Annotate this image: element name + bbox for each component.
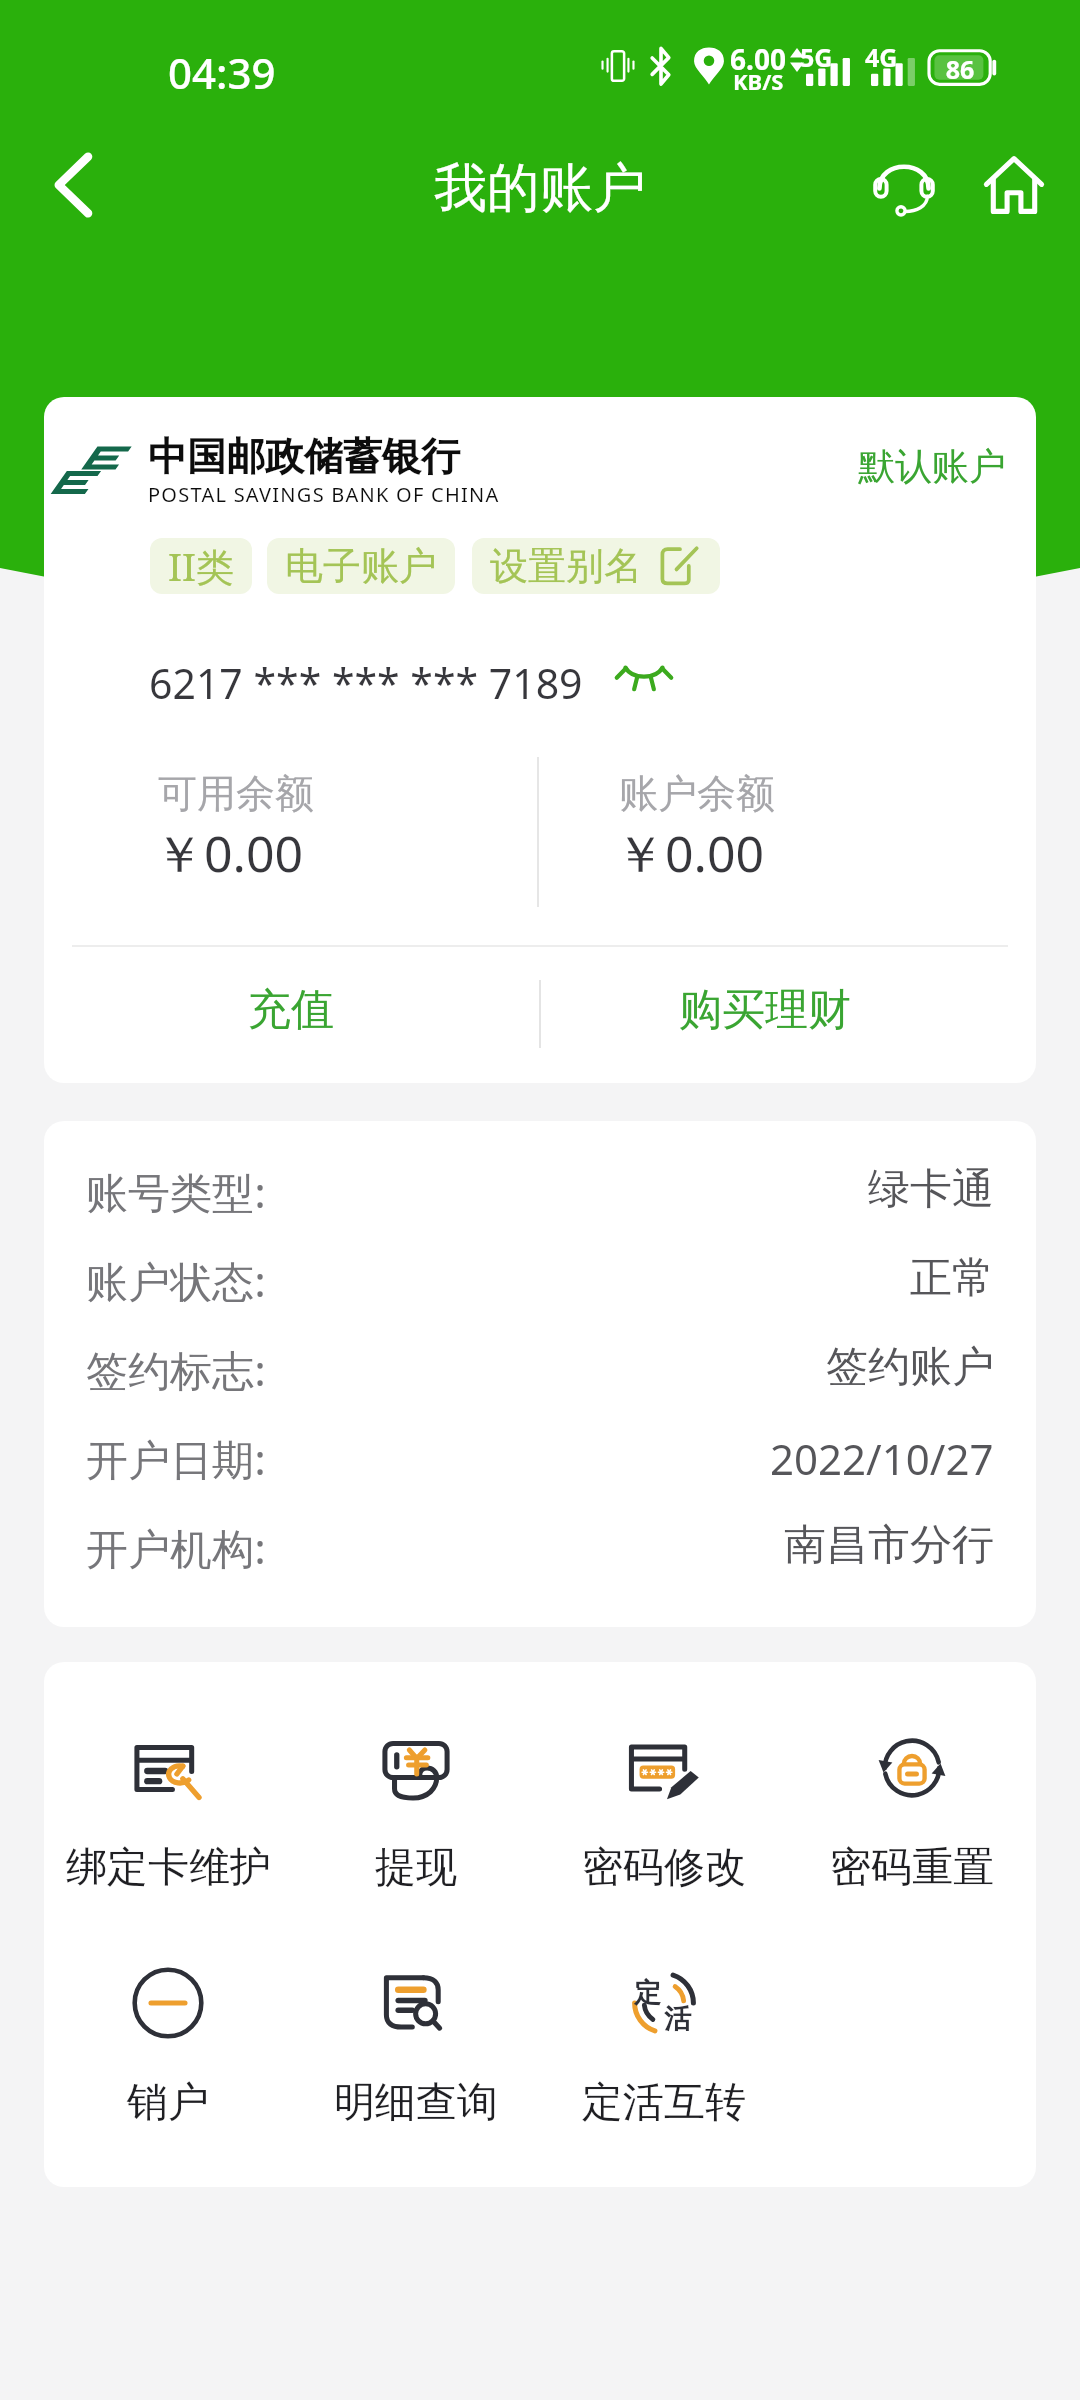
staticText: 可用余额 [158,769,314,818]
staticText: 绿卡通 [868,1163,994,1216]
staticText: 购买理财 [679,983,851,1037]
button[interactable]: 明细查询 [292,1973,540,2129]
button[interactable]: 充值 [44,947,540,1077]
button[interactable]: Home [968,130,1060,240]
staticText: 账号类型: [86,1163,267,1220]
staticText: 账户余额 [619,769,775,818]
staticText: II类 [168,540,234,592]
staticText: 中国邮政储蓄银行 [148,432,460,481]
button[interactable]: Back [18,130,128,240]
staticText: 6.00 [730,40,786,78]
staticText: 设置别名 [490,542,642,590]
staticText: 销户 [127,2077,209,2129]
staticText: 提现 [375,1842,457,1894]
staticText: 电子账户 [285,542,437,590]
button[interactable]: 定 [540,1973,788,2129]
staticText: 6217 *** *** *** 7189 [149,655,583,711]
button[interactable]: 设置别名 [472,538,720,594]
staticText: 开户机构: [86,1519,267,1576]
button[interactable]: Customer service [858,130,950,240]
staticText: 充值 [248,983,334,1037]
button[interactable]: 默认账户 [844,425,1020,507]
staticText: 账户状态: [86,1252,267,1309]
button[interactable]: 密码修改 [540,1738,788,1894]
staticText: 正常 [910,1252,994,1305]
button[interactable]: 密码重置 [788,1738,1036,1894]
staticText: 密码修改 [582,1842,746,1894]
staticText: 默认账户 [858,443,1006,490]
staticText: POSTAL SAVINGS BANK OF CHINA [148,481,500,508]
staticText: 活 [664,2002,691,2036]
staticText: 开户日期: [86,1430,267,1487]
staticText: ￥0.00 [154,819,304,887]
button[interactable]: Toggle card number visibility [604,640,684,712]
staticText: 签约标志: [86,1341,267,1398]
staticText: 绑定卡维护 [66,1842,271,1894]
staticText: 86 [936,52,984,86]
staticText: 04:39 [168,44,276,101]
staticText: ￥0.00 [615,819,765,887]
staticText: 5G [800,40,833,74]
button[interactable]: 购买理财 [540,947,990,1077]
button[interactable]: 提现 [292,1738,540,1894]
button[interactable]: 销户 [44,1973,292,2129]
staticText: KB/S [733,66,784,96]
staticText: 2022/10/27 [770,1430,994,1487]
staticText: 南昌市分行 [784,1519,994,1572]
button[interactable]: 绑定卡维护 [44,1738,292,1894]
button[interactable]: 电子账户 [267,538,455,594]
staticText: 签约账户 [826,1341,994,1394]
staticText: 4G [865,40,898,74]
staticText: 定 [634,1976,661,2010]
staticText: 明细查询 [334,2077,498,2129]
button[interactable]: II类 [150,538,252,594]
staticText: 定活互转 [582,2077,746,2129]
staticText: 我的账户 [0,155,1080,222]
staticText: 密码重置 [830,1842,994,1894]
